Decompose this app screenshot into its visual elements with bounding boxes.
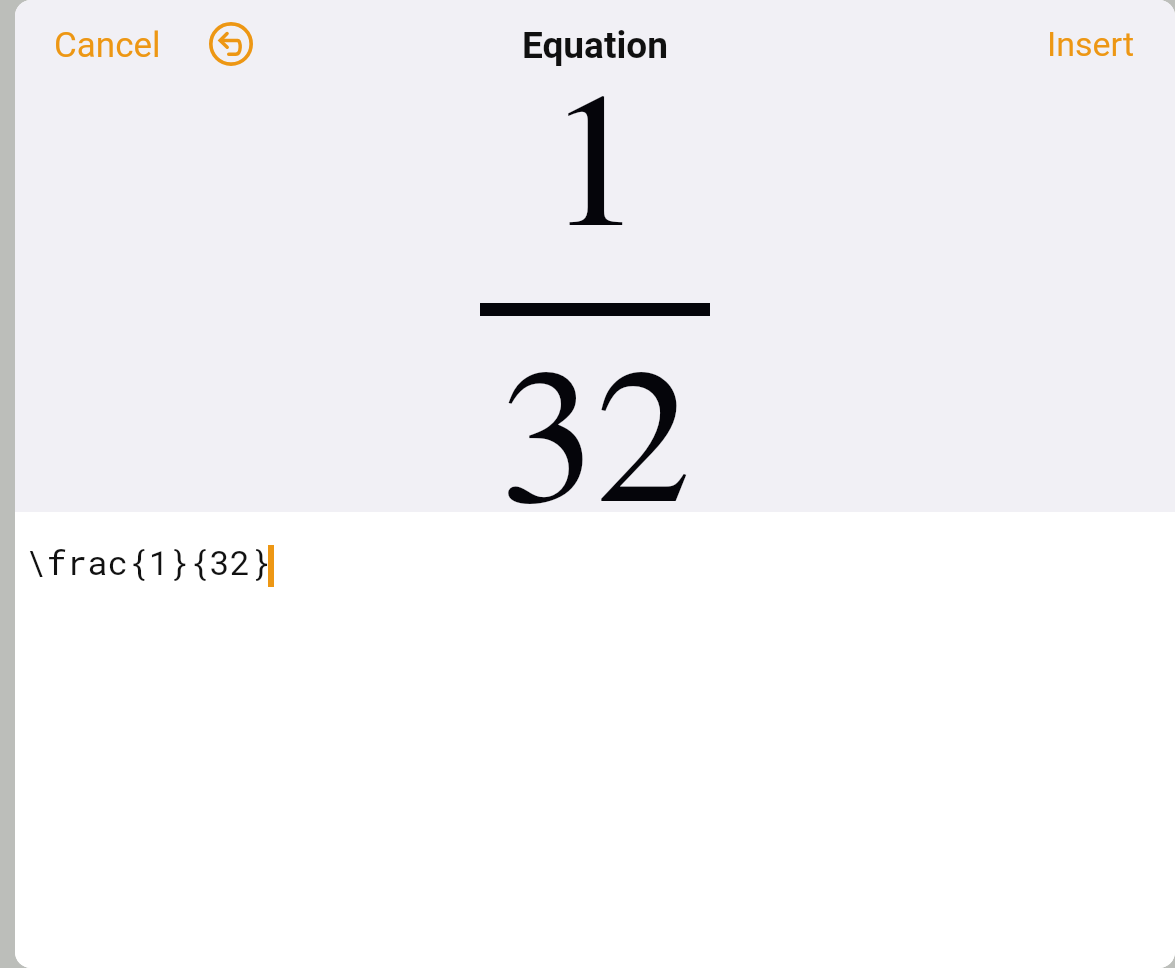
staticText: 32 xyxy=(500,299,691,554)
staticText: Equation xyxy=(522,24,668,67)
staticText: Insert xyxy=(1047,24,1135,64)
staticText: \frac{1}{32} xyxy=(26,539,271,584)
button[interactable]: Undo xyxy=(202,15,260,73)
button[interactable]: Cancel xyxy=(42,15,173,76)
button[interactable]: Insert xyxy=(1035,14,1147,74)
staticText: Cancel xyxy=(54,25,161,66)
button[interactable]: \frac{1}{32} xyxy=(15,512,1175,968)
staticText: 1 xyxy=(547,23,643,278)
